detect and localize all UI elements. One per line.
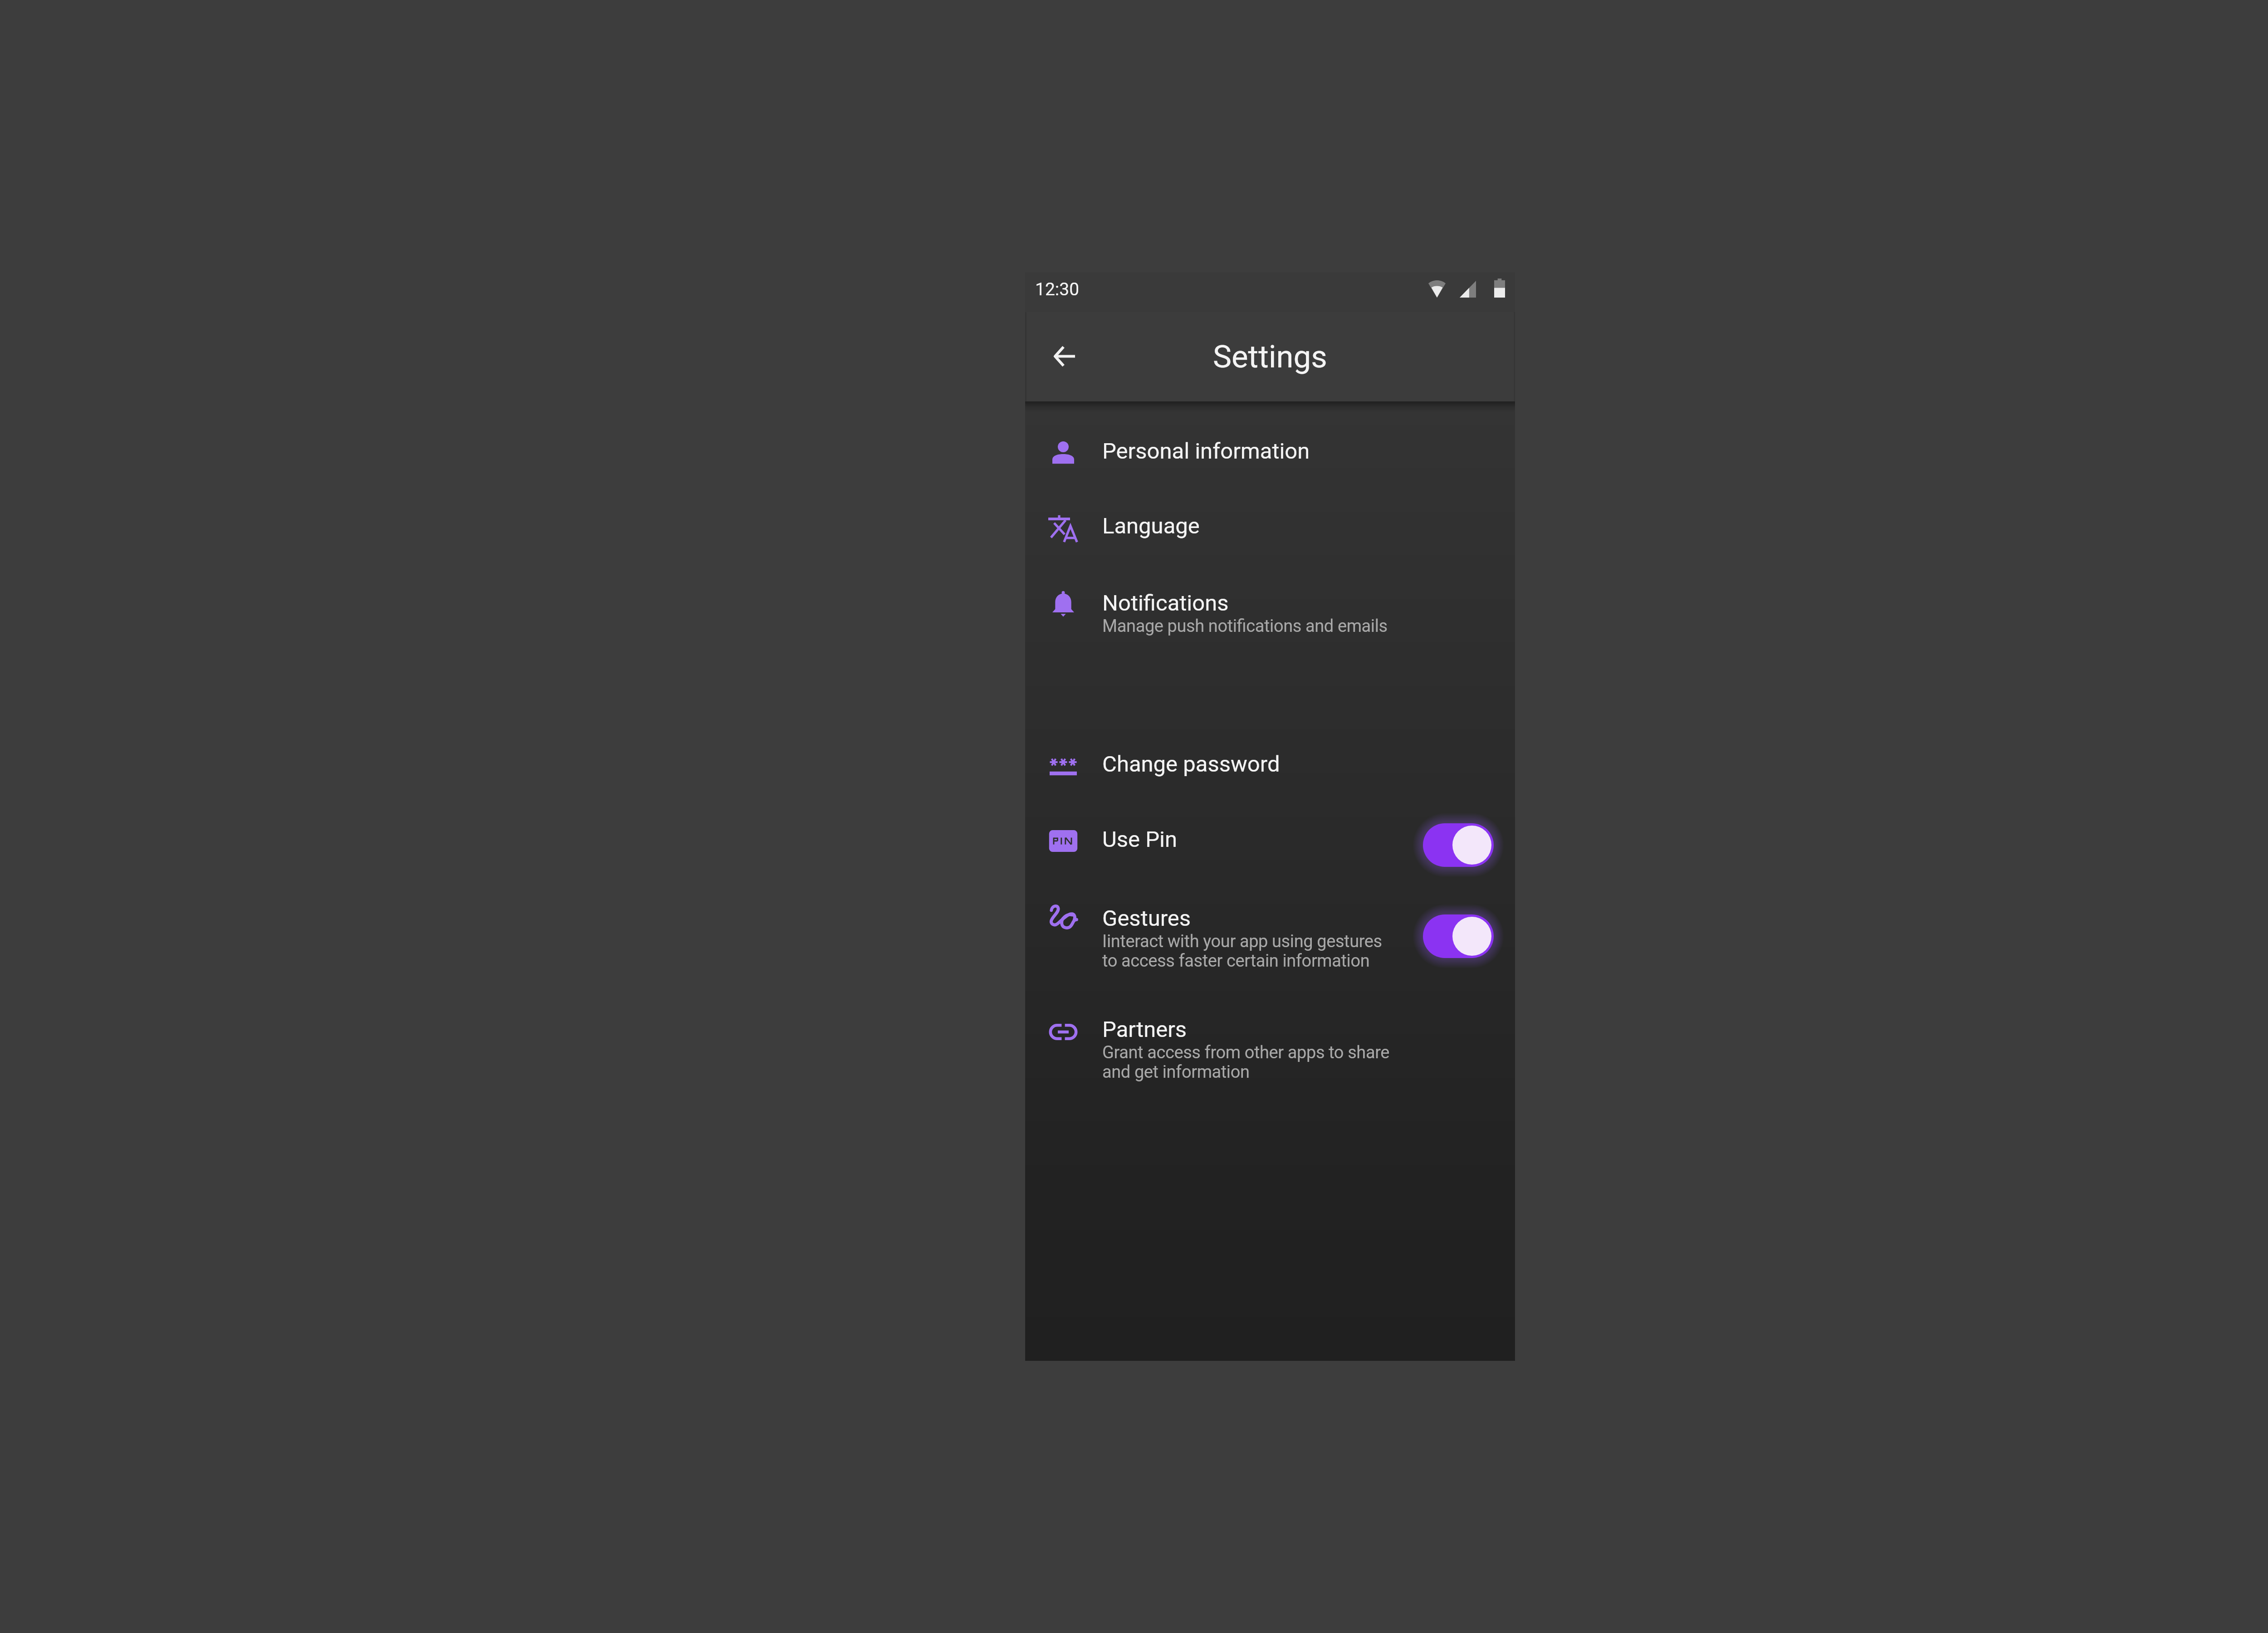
- staticText: Use Pin: [1102, 826, 1178, 852]
- button[interactable]: Use Pin switch: [1423, 823, 1494, 867]
- staticText: 12:30: [1035, 279, 1080, 300]
- staticText: Grant access from other apps to share an…: [1102, 1042, 1390, 1082]
- button[interactable]: Gestures switch: [1423, 914, 1494, 958]
- button[interactable]: Back: [1038, 332, 1089, 382]
- button[interactable]: Partners: [1025, 1001, 1515, 1083]
- staticText: Gestures: [1102, 905, 1191, 931]
- staticText: Notifications: [1102, 590, 1229, 616]
- staticText: Partners: [1102, 1017, 1187, 1042]
- staticText: Personal information: [1102, 438, 1310, 464]
- staticText: Iinteract with your app using gestures t…: [1102, 931, 1382, 971]
- button[interactable]: Gestures: [1025, 890, 1515, 972]
- button[interactable]: Change password: [1025, 736, 1515, 795]
- staticText: Change password: [1102, 751, 1280, 777]
- staticText: Settings: [1213, 338, 1327, 375]
- button[interactable]: Language: [1025, 498, 1515, 557]
- staticText: Language: [1102, 513, 1200, 539]
- button[interactable]: Notifications: [1025, 575, 1515, 656]
- button[interactable]: Personal information: [1025, 423, 1515, 482]
- staticText: Manage push notifications and emails: [1102, 616, 1388, 636]
- button[interactable]: Use Pin: [1025, 811, 1515, 870]
